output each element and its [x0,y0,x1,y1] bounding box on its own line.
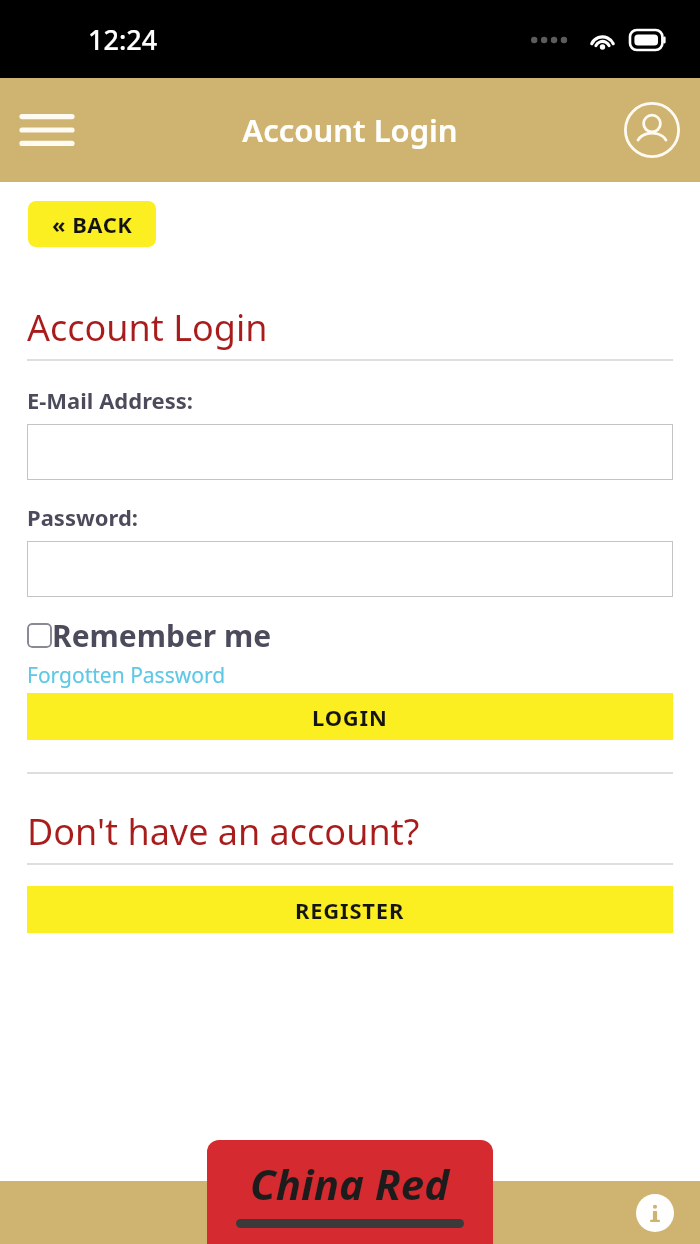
staticText: Remember me [52,615,272,656]
button[interactable]: LOGIN [27,693,673,740]
staticText: LOGIN [312,702,388,732]
button[interactable]: Menu [14,99,80,161]
staticText: Account Login [242,109,458,151]
staticText: REGISTER [295,895,405,925]
button[interactable]: Forgotten Password [27,661,226,690]
staticText: China Red [250,1155,450,1212]
staticText: Forgotten Password [27,661,226,690]
button[interactable]: Account [618,96,686,164]
button[interactable] [27,541,673,597]
button[interactable]: Info [636,1194,674,1232]
staticText: Don't have an account? [27,807,420,856]
staticText: E-Mail Address: [27,385,193,415]
button[interactable]: Remember me [27,615,272,656]
button[interactable]: REGISTER [27,886,673,933]
button[interactable]: « BACK [28,201,156,247]
button[interactable] [27,424,673,480]
staticText: Password: [27,502,138,532]
staticText: « BACK [52,209,133,239]
staticText: Account Login [27,303,268,352]
staticText: 12:24 [88,21,158,58]
button[interactable]: China Red logo [207,1140,493,1244]
